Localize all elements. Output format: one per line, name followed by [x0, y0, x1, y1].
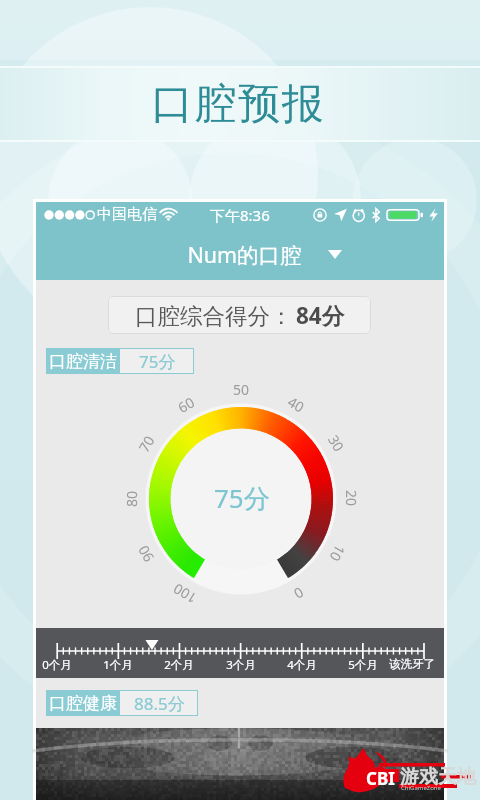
- button[interactable]: 口腔健康: [46, 690, 198, 716]
- staticText: 40: [284, 392, 309, 417]
- staticText: 84分: [296, 300, 345, 331]
- staticText: ChiGameZone: [401, 784, 441, 792]
- staticText: 口腔清洁: [49, 351, 117, 372]
- button[interactable]: Num的口腔: [36, 228, 444, 280]
- staticText: 2个月: [164, 657, 194, 673]
- staticText: 80: [122, 490, 141, 507]
- staticText: 70: [134, 431, 159, 456]
- staticText: 游戏天地: [400, 765, 476, 789]
- staticText: 60: [174, 392, 199, 417]
- staticText: CBI: [366, 767, 395, 790]
- staticText: 该洗牙了: [389, 657, 435, 671]
- staticText: 1个月: [103, 657, 133, 673]
- staticText: 10: [325, 541, 350, 565]
- staticText: 75分: [139, 350, 176, 373]
- staticText: 0: [290, 583, 307, 604]
- staticText: 口腔健康: [49, 693, 117, 714]
- staticText: 100: [169, 579, 200, 608]
- staticText: 0个月: [42, 657, 72, 673]
- staticText: 口腔预报: [151, 78, 326, 131]
- staticText: 3个月: [226, 657, 256, 673]
- other: Select profile: [328, 250, 342, 259]
- button[interactable]: 口腔清洁: [46, 348, 194, 374]
- staticText: Num的口腔: [187, 240, 302, 269]
- staticText: 4个月: [287, 657, 317, 673]
- staticText: 20: [342, 490, 361, 507]
- staticText: 中国电信: [97, 205, 157, 224]
- staticText: 30: [324, 431, 349, 456]
- button[interactable]: 口腔综合得分：: [108, 296, 371, 334]
- staticText: 88.5分: [134, 692, 185, 715]
- staticText: 5个月: [348, 657, 378, 673]
- staticText: 下午8:36: [210, 205, 270, 225]
- staticText: 75分: [214, 480, 270, 516]
- button[interactable]: [36, 728, 444, 800]
- button[interactable]: 0个月: [36, 628, 444, 678]
- staticText: 50: [233, 380, 250, 399]
- staticText: 口腔综合得分：: [135, 302, 293, 330]
- staticText: 90: [133, 541, 158, 565]
